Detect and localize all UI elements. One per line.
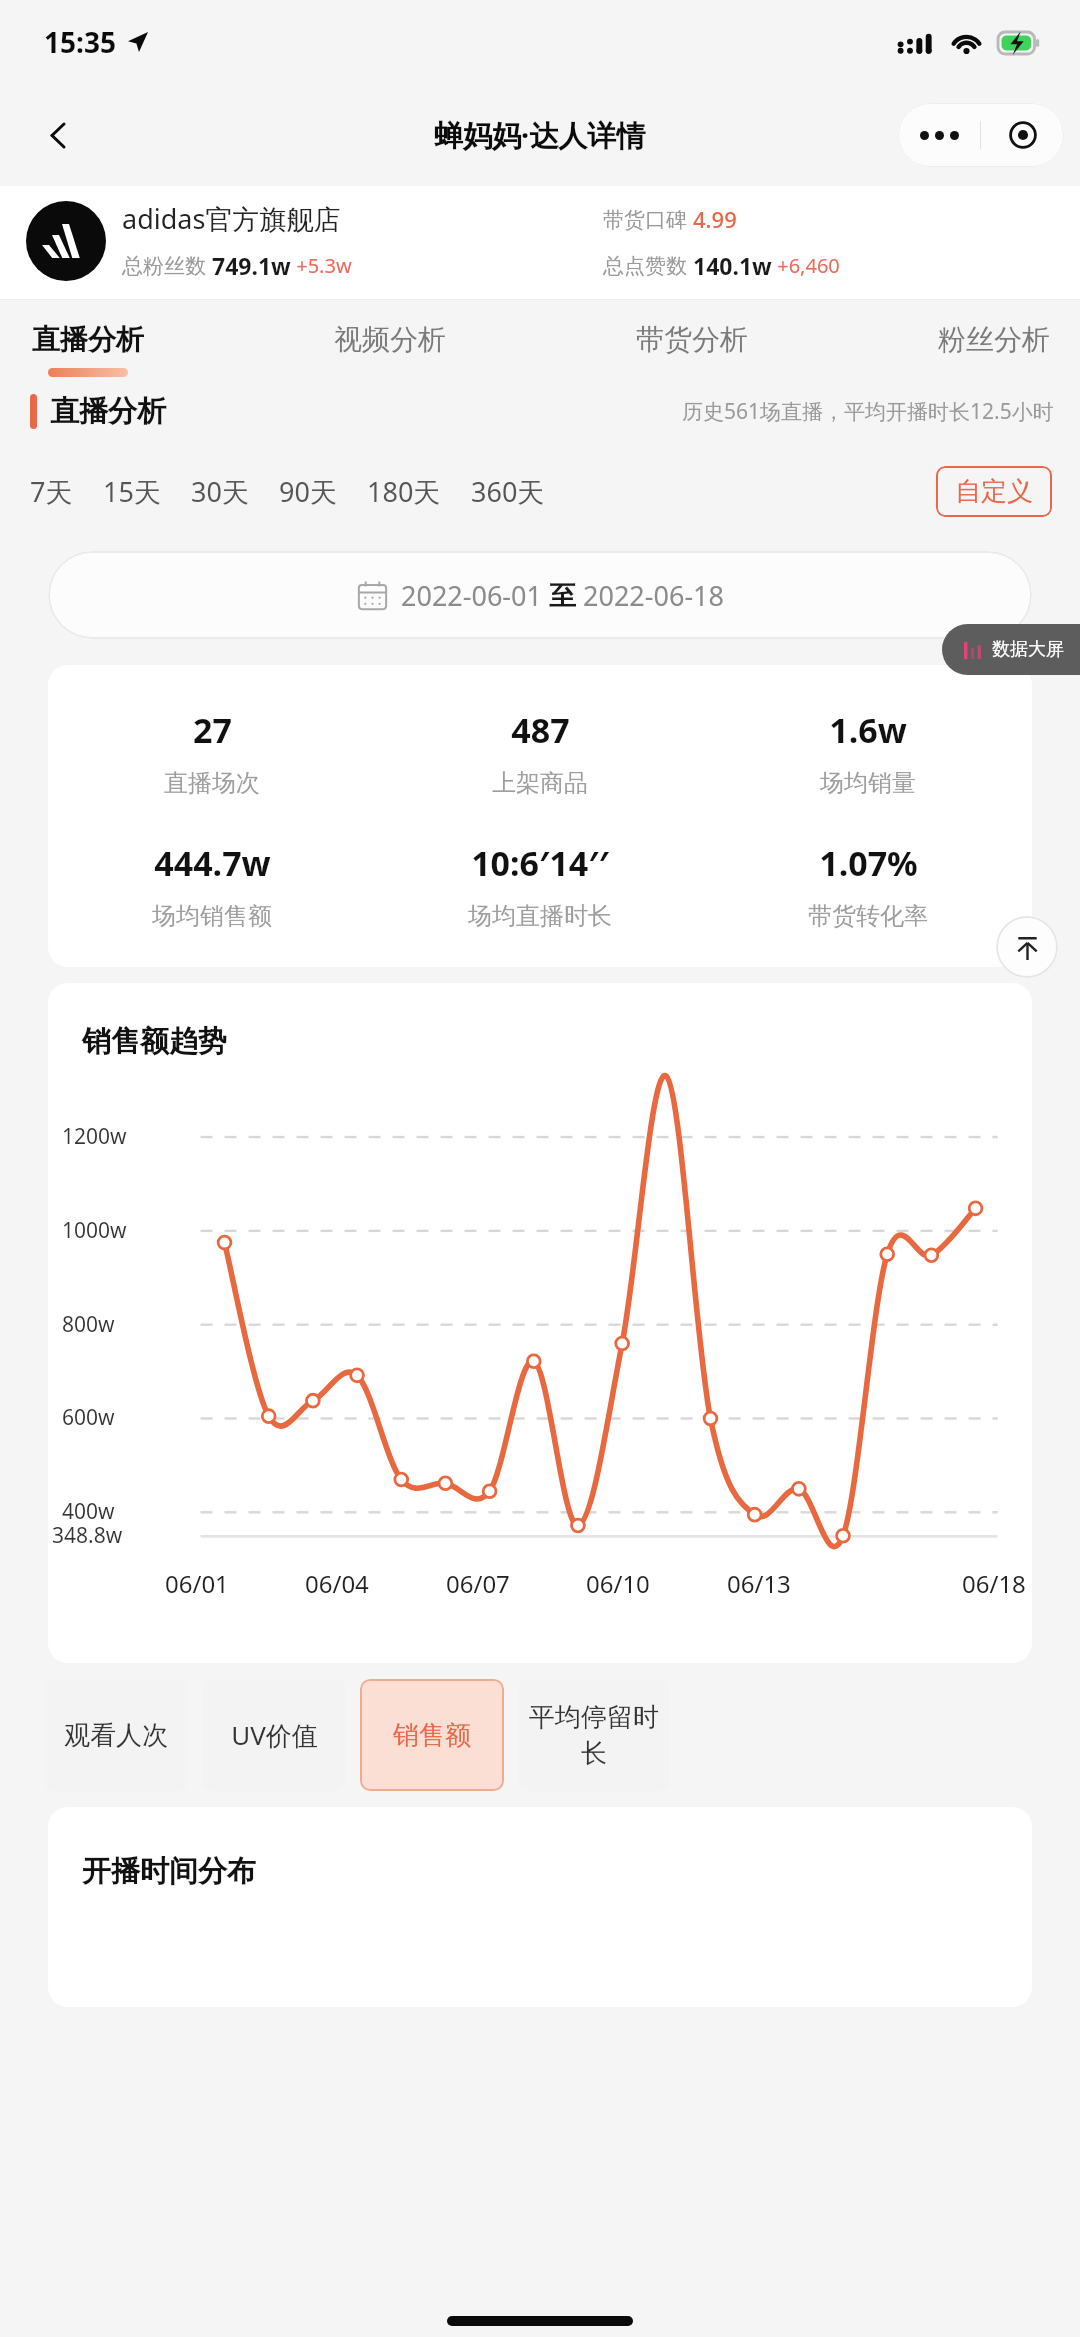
staticText: 上架商品 [492,768,588,798]
staticText: 2022-06-18 [576,577,724,614]
staticText: 600w [62,1403,115,1432]
staticText: 749.1w [212,250,291,281]
button[interactable]: Close mini program [981,103,1064,167]
staticText: 1000w [62,1216,127,1245]
button[interactable]: 487 [376,707,704,798]
button[interactable]: 10:6′14′′ [376,840,704,931]
staticText: 348.8w [52,1521,123,1550]
staticText: 直播场次 [164,768,260,798]
staticText: 10:6′14′′ [471,840,609,886]
button[interactable]: 30天 [191,473,279,510]
staticText: 487 [511,707,570,753]
staticText: 06/04 [305,1567,369,1600]
button[interactable]: 7天 [30,473,103,510]
button[interactable]: 15天 [103,473,191,510]
staticText: +5.3w [291,252,352,279]
staticText: 1.07% [819,840,918,886]
staticText: 06/01 [165,1567,229,1600]
staticText: 4.99 [693,204,737,234]
button[interactable]: UV价值 [202,1679,346,1791]
button[interactable]: 销售额 [360,1679,504,1791]
staticText: 粉丝分析 [938,322,1050,357]
button[interactable]: 360天 [471,473,575,510]
staticText: 2022-06-01 [401,577,549,614]
staticText: 90天 [279,473,337,510]
staticText: 15天 [103,473,161,510]
staticText: UV价值 [231,1717,318,1753]
button[interactable]: 数据大屏 [942,624,1080,675]
staticText: 15:35 [44,23,116,61]
button[interactable]: 直播分析 [26,322,150,377]
staticText: adidas官方旗舰店 [122,200,341,237]
button[interactable]: 观看人次 [44,1679,188,1791]
staticText: 历史561场直播，平均开播时长12.5小时 [682,397,1054,426]
staticText: 180天 [367,473,441,510]
button[interactable]: 180天 [367,473,471,510]
button[interactable]: 粉丝分析 [932,322,1056,377]
staticText: 场均销售额 [152,901,272,931]
staticText: 蝉妈妈·达人详情 [434,115,646,155]
staticText: 场均销量 [820,768,916,798]
staticText: 销售额趋势 [82,1023,227,1060]
staticText: 至 [549,579,576,613]
button[interactable]: 90天 [279,473,367,510]
staticText: 06/13 [727,1567,791,1600]
staticText: 直播分析 [50,393,166,430]
staticText: 800w [62,1310,115,1339]
staticText: +6,460 [772,252,840,279]
button[interactable]: 1.6w [704,707,1032,798]
staticText: 总粉丝数 [122,251,212,280]
staticText: 销售额 [393,1719,471,1752]
button[interactable]: 27 [48,707,376,798]
staticText: 444.7w [154,840,271,886]
button[interactable]: 2022-06-01 [48,551,1032,639]
staticText: 140.1w [693,250,772,281]
button[interactable]: 444.7w [48,840,376,931]
staticText: 360天 [471,473,545,510]
staticText: 1.6w [829,707,907,753]
button[interactable]: 1.07% [704,840,1032,931]
staticText: 数据大屏 [992,638,1064,661]
button[interactable]: 视频分析 [328,322,452,377]
staticText: 观看人次 [64,1719,168,1752]
staticText: 视频分析 [334,322,446,357]
button[interactable]: 带货分析 [630,322,754,377]
staticText: 场均直播时长 [468,901,612,931]
staticText: 开播时间分布 [82,1853,256,1890]
staticText: 30天 [191,473,249,510]
staticText: 带货口碑 [603,205,693,234]
button[interactable]: 平均停留时长 [518,1679,670,1791]
staticText: 总点赞数 [603,251,693,280]
staticText: 带货分析 [636,322,748,357]
button[interactable]: Scroll to top [996,916,1058,978]
button[interactable]: 自定义 [936,466,1052,517]
staticText: 平均停留时长 [526,1701,662,1770]
staticText: 27 [193,707,232,753]
staticText: 带货转化率 [808,901,928,931]
staticText: 06/10 [586,1567,650,1600]
staticText: 06/07 [446,1567,510,1600]
staticText: 7天 [30,473,73,510]
button[interactable]: More options [898,103,980,167]
staticText: 直播分析 [32,322,144,357]
staticText: 400w [62,1497,115,1526]
staticText: 06/18 [962,1567,1026,1600]
staticText: 1200w [62,1122,127,1151]
staticText: 自定义 [955,475,1033,508]
button[interactable]: Back [24,101,92,169]
